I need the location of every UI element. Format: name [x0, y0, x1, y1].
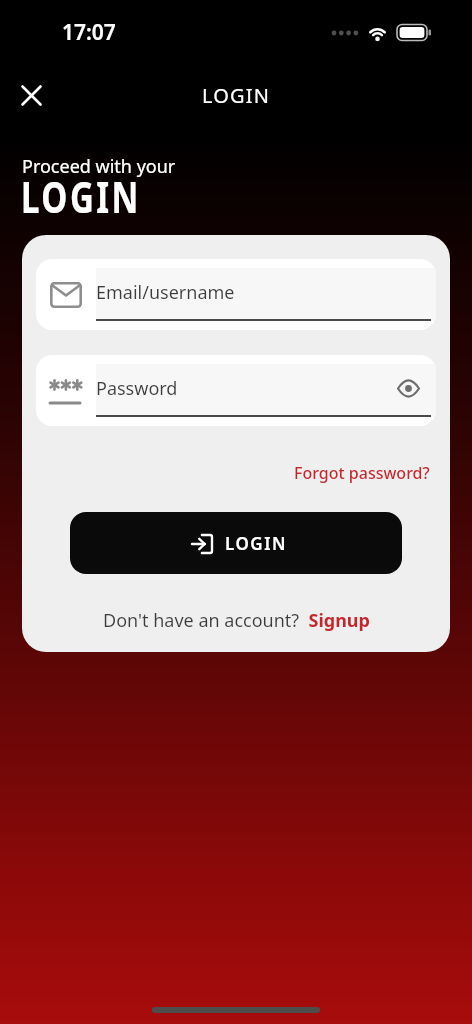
- staticText: LOGIN: [21, 167, 141, 226]
- staticText: 17:07: [62, 18, 116, 47]
- button[interactable]: Forgot password?: [294, 462, 430, 484]
- staticText: Email/username: [96, 280, 235, 305]
- button[interactable]: Email/username: [36, 259, 436, 330]
- button[interactable]: LOGIN: [70, 512, 402, 574]
- button[interactable]: Don't have an account? Signup: [103, 608, 370, 633]
- button[interactable]: [14, 78, 48, 112]
- staticText: LOGIN: [202, 82, 271, 109]
- staticText: Password: [96, 376, 178, 401]
- staticText: LOGIN: [225, 532, 287, 555]
- staticText: Proceed with your: [22, 154, 176, 179]
- button[interactable]: Password: [36, 355, 436, 426]
